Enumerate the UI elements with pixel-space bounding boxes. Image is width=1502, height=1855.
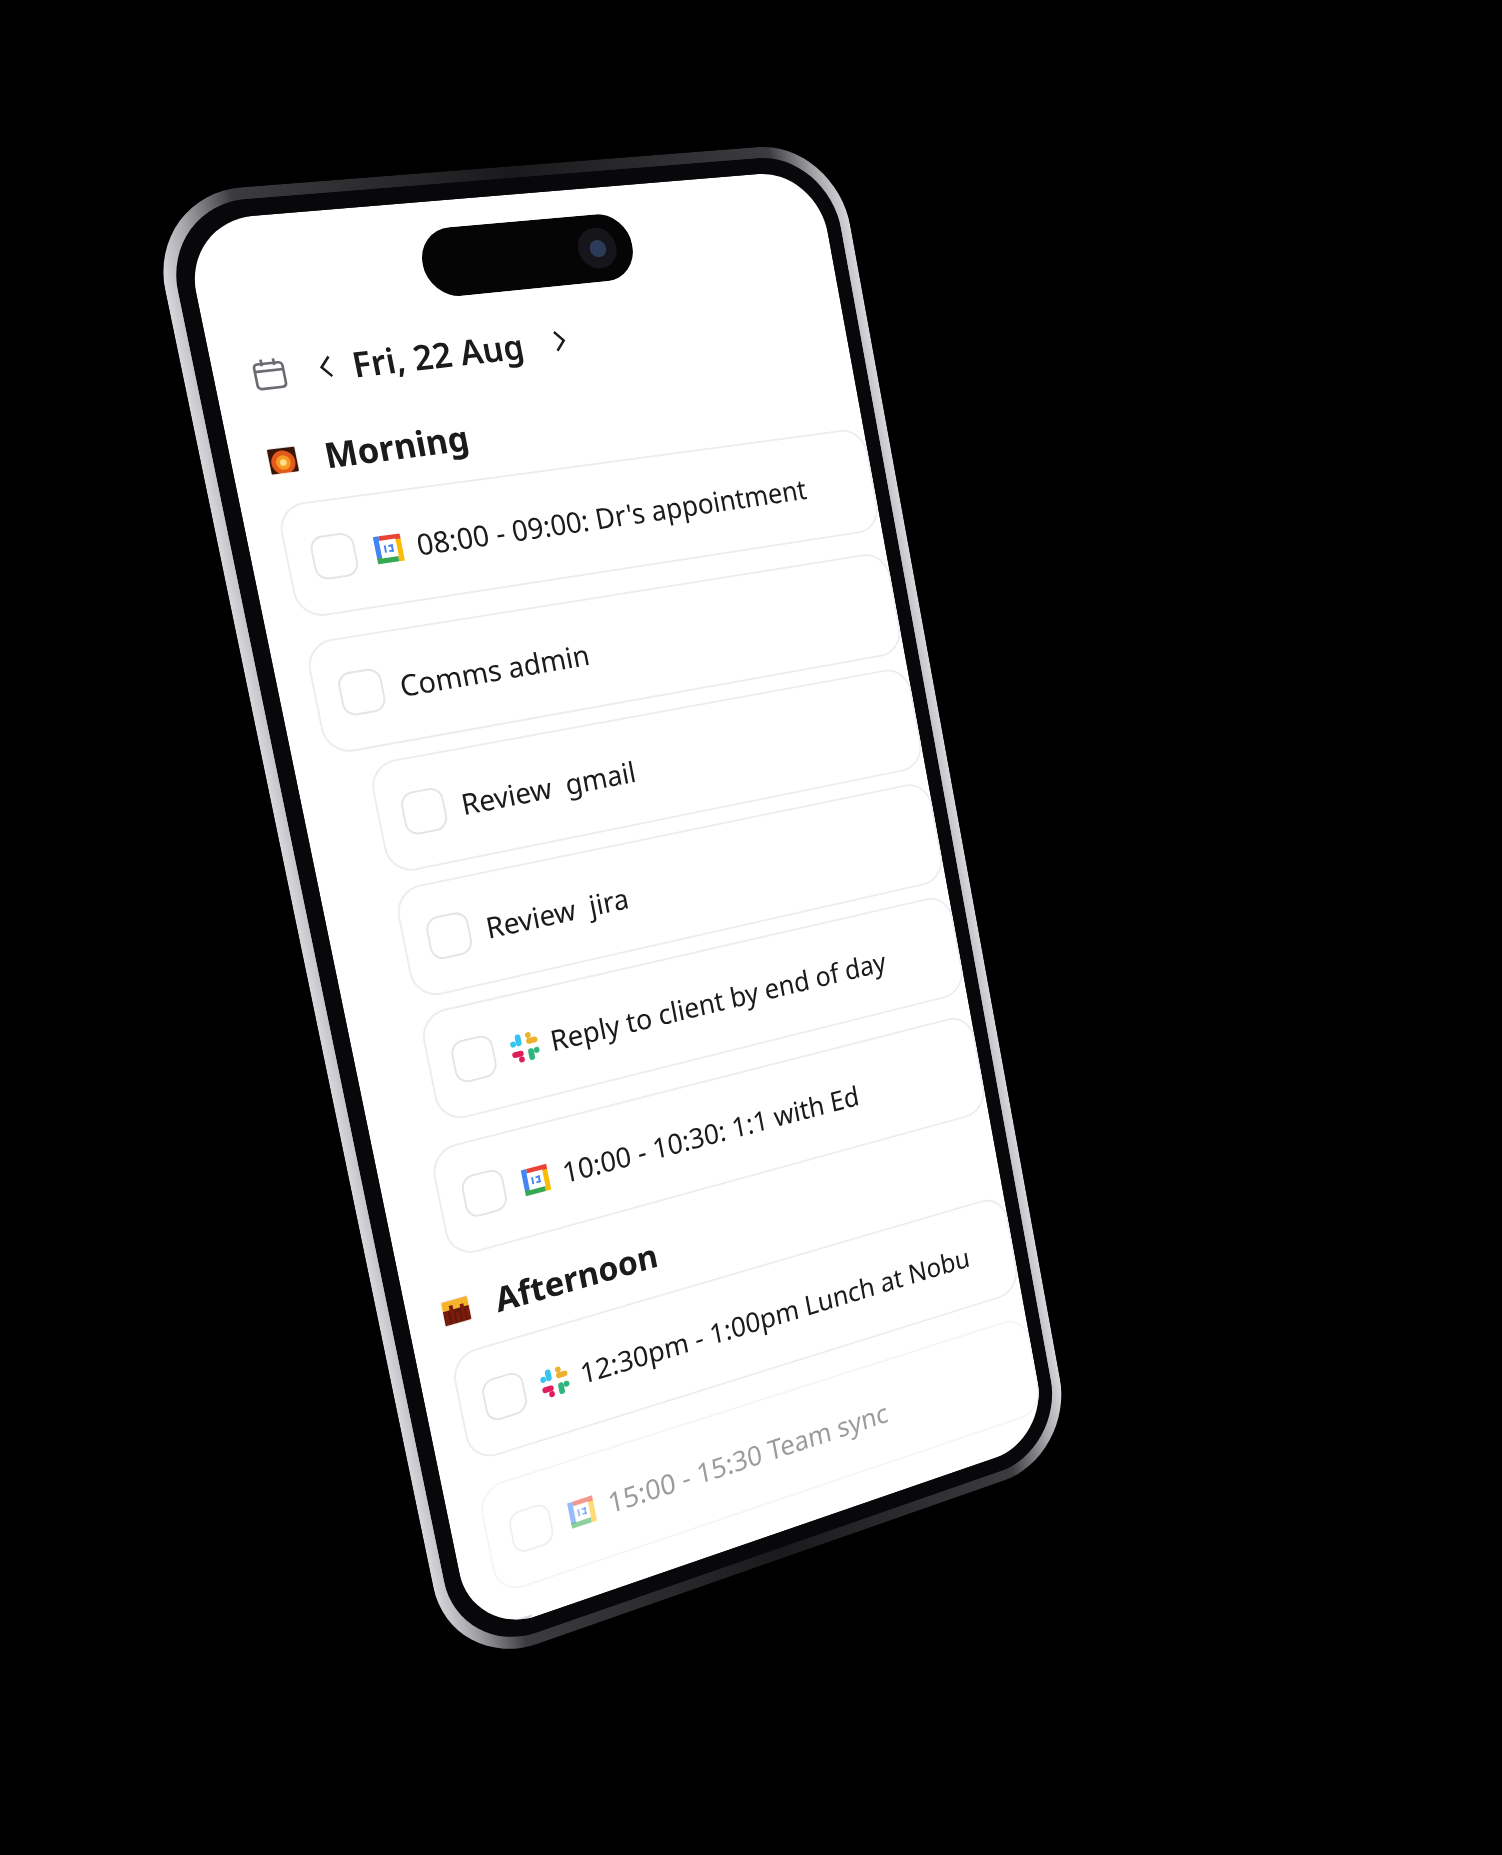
staticText: Reply to client by end of day <box>547 943 889 1059</box>
button[interactable]: Toggle Review jira <box>392 780 946 1001</box>
button[interactable]: Toggle 15:00 - 15:30 Team sync <box>507 1501 556 1555</box>
button[interactable]: Toggle Review jira <box>424 910 474 962</box>
button[interactable]: Toggle Comms admin <box>336 667 388 718</box>
button[interactable]: Toggle Review gmail <box>367 666 925 876</box>
staticText: 08:00 - 09:00: Dr's appointment <box>413 470 809 564</box>
staticText: 12:30pm - 1:00pm Lunch at Nobu <box>577 1239 972 1392</box>
button[interactable]: Toggle 12:30pm - 1:00pm Lunch at Nobu <box>480 1370 529 1424</box>
staticText: 10:00 - 10:30: 1:1 with Ed <box>559 1076 863 1191</box>
staticText: Fri, 22 Aug <box>348 322 528 388</box>
staticText: Evening <box>557 1562 681 1609</box>
button[interactable]: Evening <box>504 1444 1026 1627</box>
staticText: 15:00 - 15:30 Team sync <box>604 1394 890 1521</box>
staticText: Comms admin <box>396 634 593 705</box>
button[interactable]: Previous day <box>300 342 353 392</box>
button[interactable]: Toggle 08:00 - 09:00: Dr's appointment <box>275 427 882 620</box>
button[interactable]: Toggle Review gmail <box>398 786 450 837</box>
button[interactable]: Toggle 08:00 - 09:00: Dr's appointment <box>308 531 361 581</box>
button[interactable]: Toggle Reply to client by end of day <box>418 893 967 1124</box>
button[interactable]: Toggle 10:00 - 10:30: 1:1 with Ed <box>428 1013 988 1259</box>
button[interactable]: Calendar <box>239 346 298 400</box>
staticText: Morning <box>320 414 473 479</box>
staticText: Afternoon <box>491 1232 662 1322</box>
button[interactable]: Toggle Reply to client by end of day <box>449 1033 499 1085</box>
button[interactable]: Toggle 15:00 - 15:30 Team sync <box>476 1315 1043 1596</box>
button[interactable]: Next day <box>535 317 584 365</box>
button[interactable]: Afternoon <box>436 1143 977 1338</box>
button[interactable]: Toggle Comms admin <box>303 551 904 756</box>
button[interactable]: Toggle 12:30pm - 1:00pm Lunch at Nobu <box>449 1194 1021 1464</box>
staticText: Review jira <box>482 878 632 947</box>
button[interactable]: Morning <box>261 369 836 487</box>
button[interactable]: Toggle 10:00 - 10:30: 1:1 with Ed <box>459 1167 509 1220</box>
staticText: Review gmail <box>458 752 639 823</box>
